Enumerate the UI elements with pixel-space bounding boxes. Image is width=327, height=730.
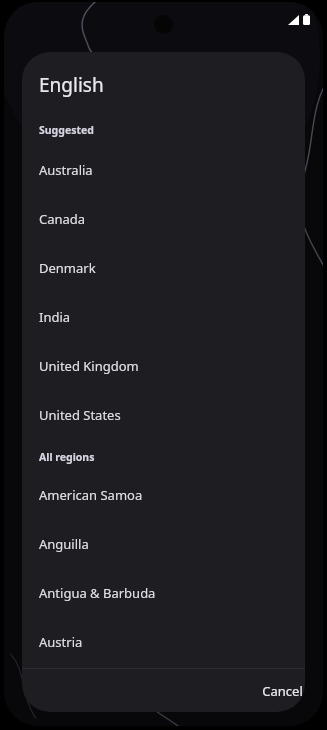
button[interactable]: Austria [22, 617, 305, 666]
staticText: United States [39, 406, 121, 424]
button[interactable]: American Samoa [22, 470, 305, 519]
button[interactable]: Canada [22, 194, 305, 243]
button[interactable]: India [22, 292, 305, 341]
staticText: Antigua & Barbuda [39, 584, 156, 602]
staticText: Anguilla [39, 535, 89, 553]
staticText: English [39, 72, 104, 98]
staticText: American Samoa [39, 486, 143, 504]
staticText: United Kingdom [39, 357, 139, 375]
button[interactable]: Anguilla [22, 519, 305, 568]
button[interactable]: United Kingdom [22, 341, 305, 390]
button[interactable]: Antigua & Barbuda [22, 568, 305, 617]
staticText: Canada [39, 210, 86, 228]
staticText: All regions [39, 450, 95, 464]
staticText: Australia [39, 161, 93, 179]
staticText: Austria [39, 633, 83, 651]
button[interactable]: Denmark [22, 243, 305, 292]
staticText: Cancel [262, 682, 303, 700]
staticText: India [39, 308, 71, 326]
staticText: Denmark [39, 259, 96, 277]
staticText: Suggested [39, 123, 94, 137]
button[interactable]: Australia [22, 145, 305, 194]
button[interactable]: Cancel [252, 675, 305, 707]
button[interactable]: United States [22, 390, 305, 439]
